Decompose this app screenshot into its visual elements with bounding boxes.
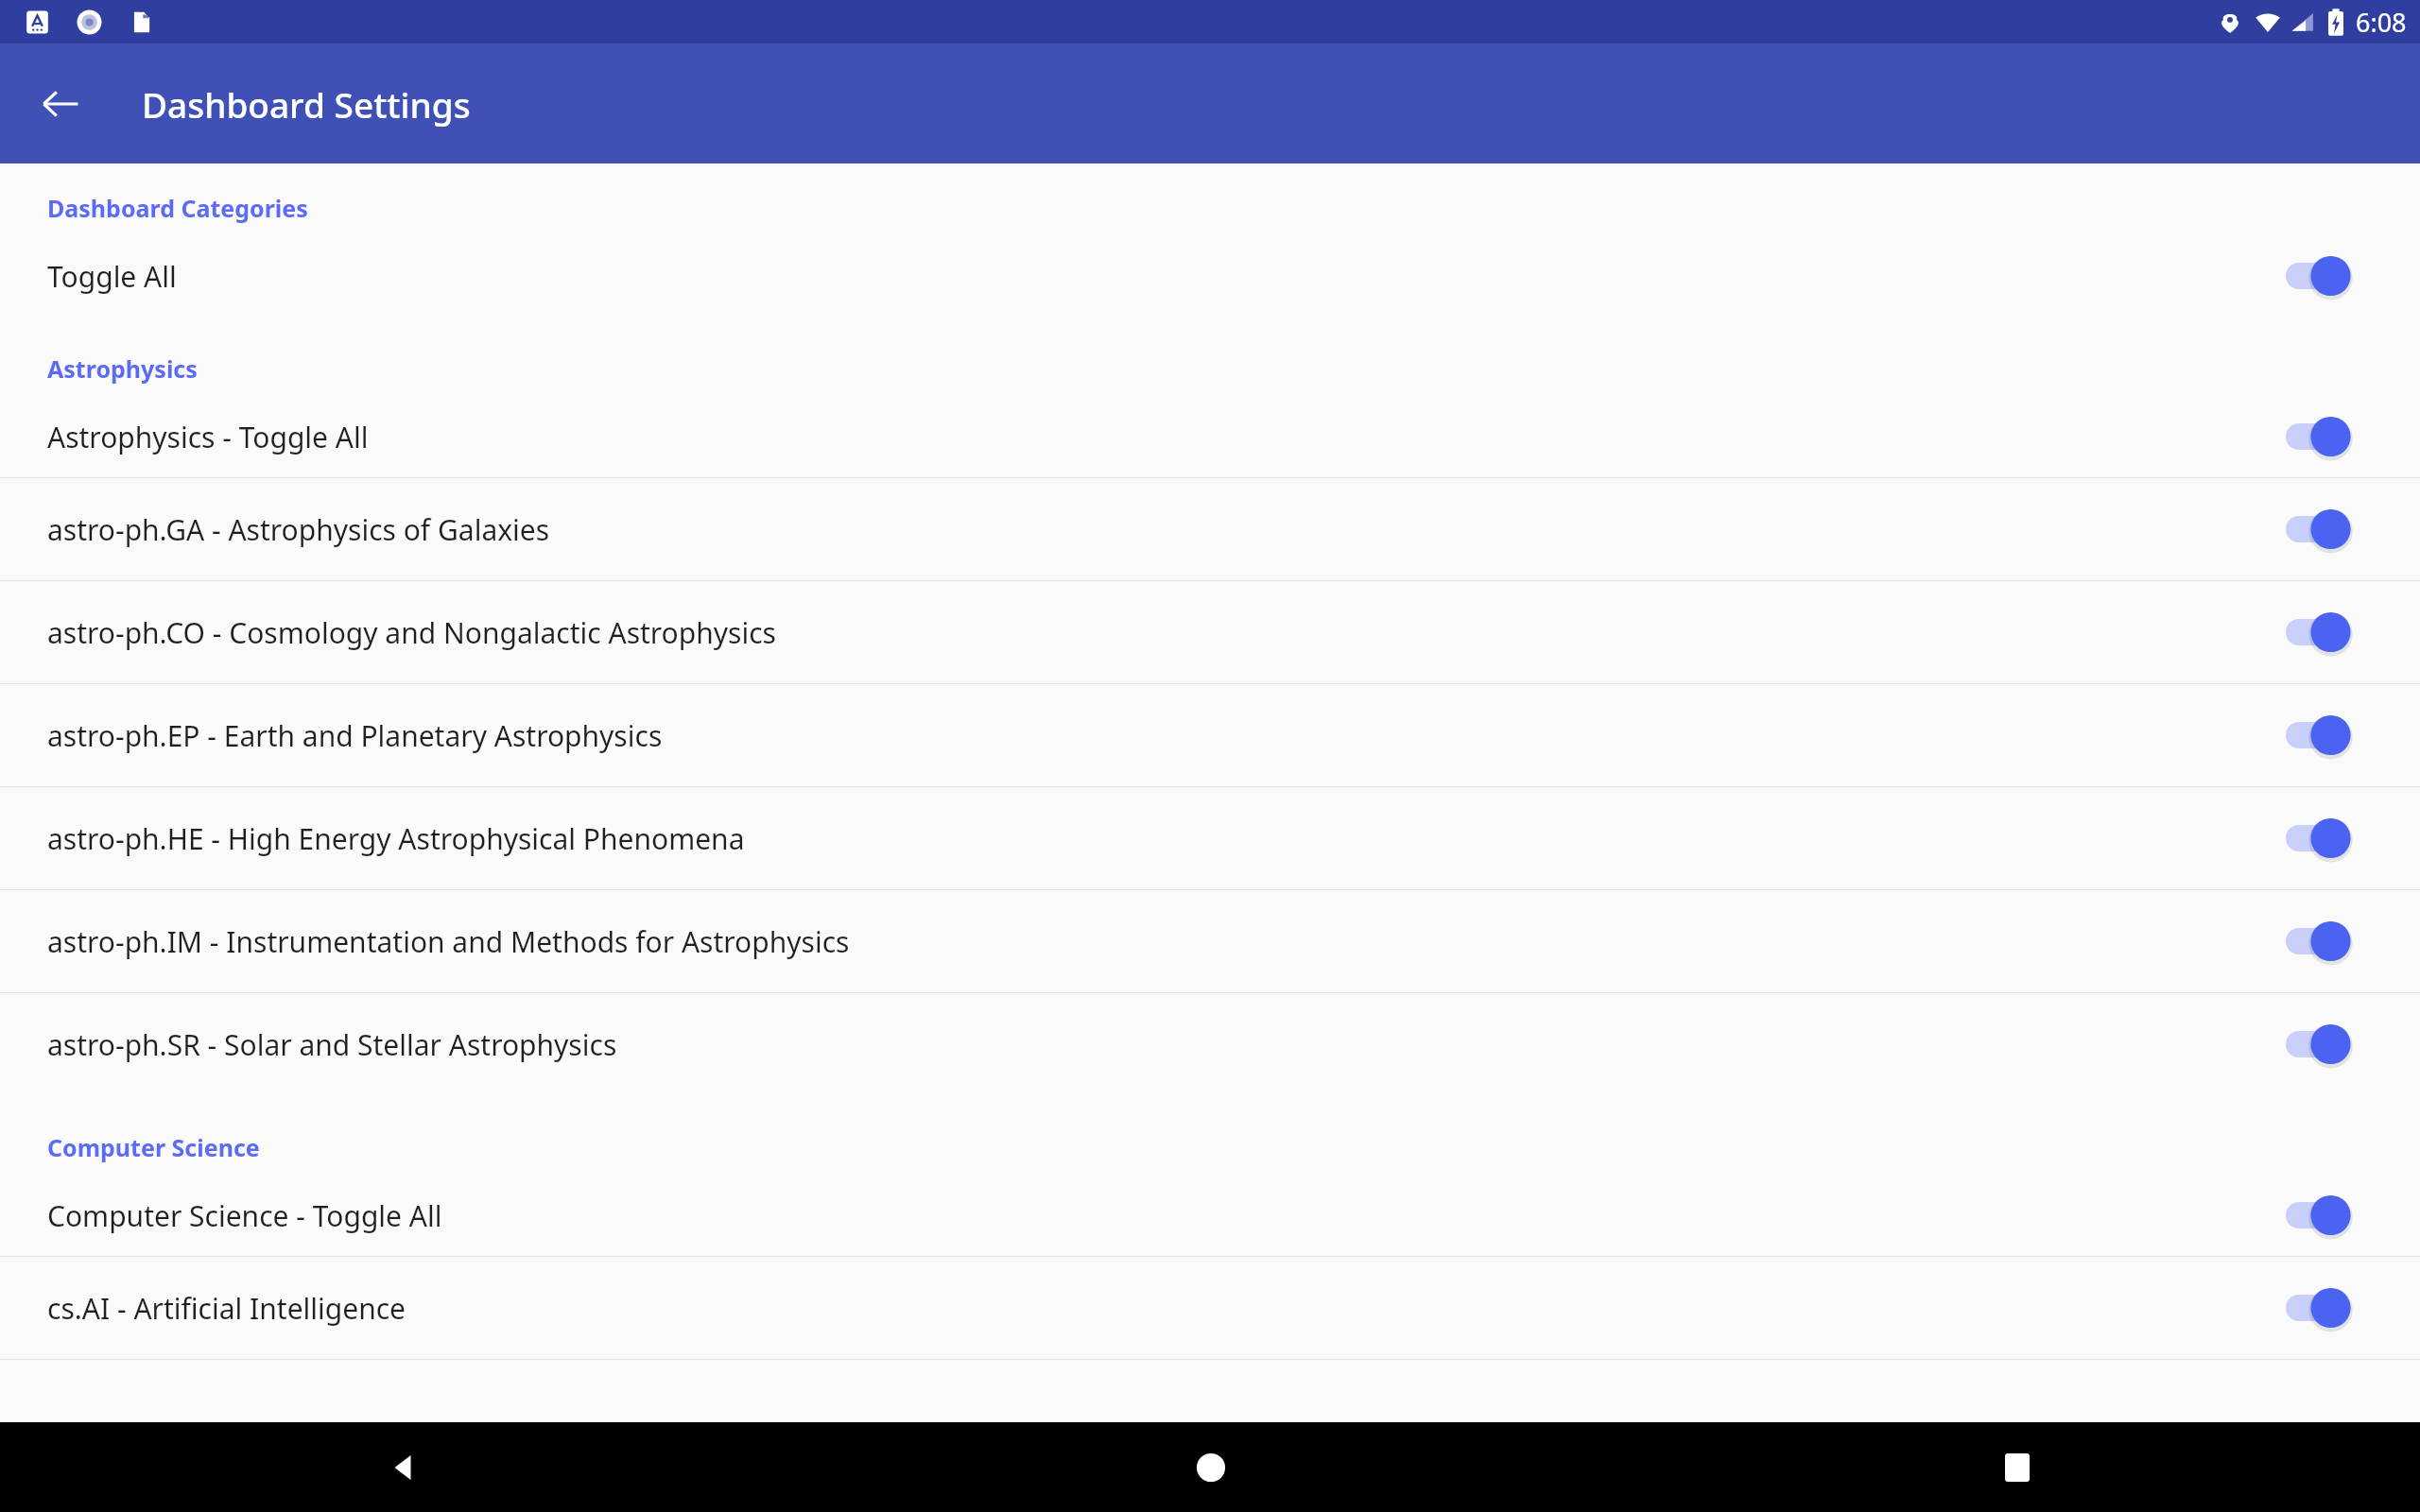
button[interactable]: Astrophysics - Toggle All — [0, 396, 2420, 477]
staticText: Toggle All — [47, 257, 2286, 296]
button[interactable]: Toggle — [2286, 911, 2373, 971]
button[interactable]: astro-ph.EP - Earth and Planetary Astrop… — [0, 684, 2420, 786]
button[interactable]: cs.AI - Artificial Intelligence — [0, 1257, 2420, 1359]
staticText: Computer Science — [47, 1131, 260, 1163]
button[interactable]: astro-ph.HE - High Energy Astrophysical … — [0, 787, 2420, 889]
staticText: Astrophysics - Toggle All — [47, 418, 2286, 456]
staticText: astro-ph.IM - Instrumentation and Method… — [47, 922, 2286, 961]
button[interactable]: Toggle All — [0, 235, 2420, 317]
staticText: astro-ph.GA - Astrophysics of Galaxies — [47, 510, 2286, 549]
button[interactable]: astro-ph.IM - Instrumentation and Method… — [0, 890, 2420, 992]
button[interactable]: Toggle — [2286, 602, 2373, 662]
button[interactable]: Toggle — [2286, 499, 2373, 559]
button[interactable]: Back — [26, 70, 95, 138]
button[interactable]: Recent apps — [1614, 1422, 2420, 1512]
staticText: astro-ph.EP - Earth and Planetary Astrop… — [47, 716, 2286, 755]
button[interactable]: Toggle — [2286, 808, 2373, 868]
button[interactable]: Toggle — [2286, 705, 2373, 765]
staticText: Astrophysics — [47, 352, 198, 385]
staticText: 6:08 — [2356, 5, 2407, 40]
staticText: astro-ph.CO - Cosmology and Nongalactic … — [47, 613, 2286, 652]
staticText: astro-ph.SR - Solar and Stellar Astrophy… — [47, 1025, 2286, 1064]
button[interactable]: astro-ph.SR - Solar and Stellar Astrophy… — [0, 993, 2420, 1095]
button[interactable]: astro-ph.CO - Cosmology and Nongalactic … — [0, 581, 2420, 683]
button[interactable]: Home — [807, 1422, 1614, 1512]
button[interactable]: astro-ph.GA - Astrophysics of Galaxies — [0, 478, 2420, 580]
staticText: Computer Science - Toggle All — [47, 1196, 2286, 1235]
button[interactable]: Toggle — [2286, 1185, 2373, 1246]
staticText: Dashboard Categories — [47, 192, 308, 224]
button[interactable]: Computer Science - Toggle All — [0, 1175, 2420, 1256]
staticText: Dashboard Settings — [142, 80, 471, 128]
staticText: cs.AI - Artificial Intelligence — [47, 1289, 2286, 1328]
staticText: astro-ph.HE - High Energy Astrophysical … — [47, 819, 2286, 858]
button[interactable]: Toggle — [2286, 406, 2373, 467]
button[interactable]: Back — [0, 1422, 807, 1512]
button[interactable]: Toggle — [2286, 246, 2373, 306]
button[interactable]: Toggle — [2286, 1278, 2373, 1338]
button[interactable]: Toggle — [2286, 1014, 2373, 1074]
